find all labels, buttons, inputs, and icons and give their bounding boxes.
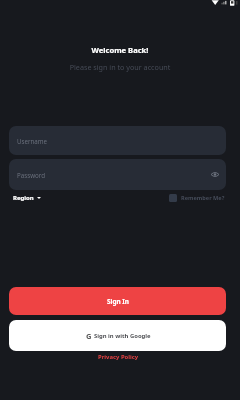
button[interactable]: Username xyxy=(9,126,226,155)
staticText: G xyxy=(86,331,92,341)
button[interactable]: G xyxy=(9,320,226,351)
staticText: Please sign in to your account xyxy=(0,62,240,72)
staticText: Sign in with Google xyxy=(94,332,151,340)
button[interactable]: Password xyxy=(9,159,226,190)
button[interactable]: Privacy Policy xyxy=(98,353,139,361)
staticText: Welcome Back! xyxy=(0,45,240,55)
staticText: Username xyxy=(17,137,48,145)
button[interactable]: Remember Me? xyxy=(169,194,225,202)
button[interactable]: Sign In xyxy=(9,287,226,315)
staticText: Region xyxy=(13,194,34,202)
button[interactable]: Show password xyxy=(208,167,222,181)
button[interactable]: Region xyxy=(13,194,41,202)
staticText: Sign In xyxy=(107,297,129,306)
staticText: Remember Me? xyxy=(181,194,225,202)
staticText: Password xyxy=(17,171,45,179)
